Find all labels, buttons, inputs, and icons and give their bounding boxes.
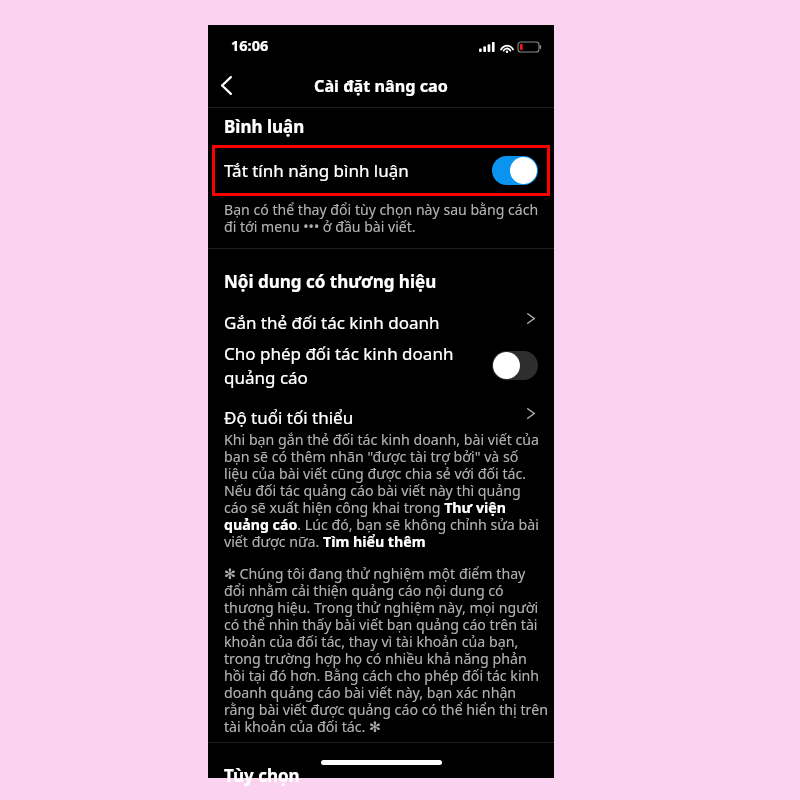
button[interactable]: Toggle on xyxy=(492,156,538,185)
staticText: Cài đặt nâng cao xyxy=(314,75,448,97)
button[interactable]: Back xyxy=(208,67,244,103)
staticText: Khi bạn gắn thẻ đối tác kinh doanh, bài … xyxy=(224,430,543,551)
button[interactable]: Toggle off xyxy=(492,351,538,380)
staticText: Bạn có thể thay đổi tùy chọn này sau bằn… xyxy=(224,200,539,236)
staticText: 16:06 xyxy=(231,35,269,55)
staticText: Nội dung có thương hiệu xyxy=(224,270,437,293)
staticText: Tùy chọn xyxy=(224,764,300,787)
staticText: Bình luận xyxy=(224,115,305,138)
button[interactable]: Tắt tính năng bình luận xyxy=(208,145,554,196)
button[interactable]: Độ tuổi tối thiểu xyxy=(208,401,554,433)
button[interactable]: Cho phép đối tác kinh doanh quảng cáo xyxy=(208,336,554,394)
button[interactable]: Gắn thẻ đối tác kinh doanh xyxy=(208,306,554,338)
staticText: ✻ Chúng tôi đang thử nghiệm một điểm tha… xyxy=(224,564,548,737)
staticText: Gắn thẻ đối tác kinh doanh xyxy=(224,311,527,334)
staticText: Độ tuổi tối thiểu xyxy=(224,406,527,429)
staticText: Tắt tính năng bình luận xyxy=(224,159,492,182)
staticText: Cho phép đối tác kinh doanh quảng cáo xyxy=(224,342,492,389)
